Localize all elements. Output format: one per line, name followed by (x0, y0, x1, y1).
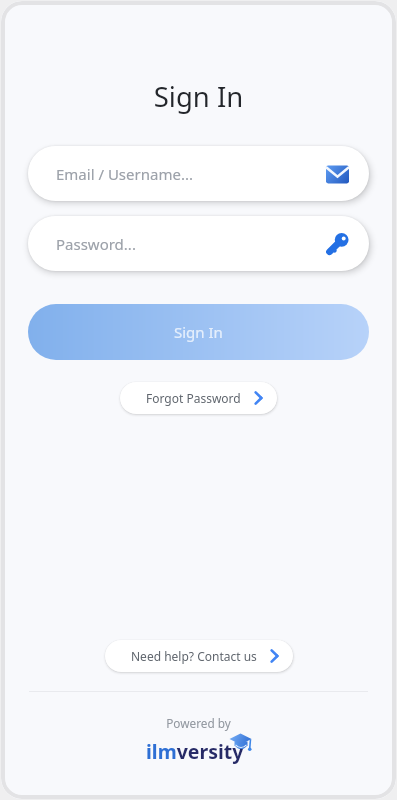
staticText: Need help? Contact us (131, 648, 257, 664)
staticText: Powered by (1, 715, 396, 731)
button[interactable]: Need help? Contact us (105, 640, 293, 672)
staticText: ilmversity (146, 738, 244, 765)
staticText: Forgot Password (146, 390, 241, 406)
staticText: Sign In (1, 78, 396, 115)
other: Need help? Contact us (270, 649, 279, 663)
staticText: Email / Username... (56, 164, 193, 184)
staticText: Sign In (174, 322, 223, 342)
button[interactable]: Forgot Password (120, 382, 277, 414)
staticText: Password... (56, 234, 136, 254)
button[interactable]: Sign In (28, 304, 369, 360)
other: Forgot Password (254, 391, 263, 405)
button[interactable]: Password... (28, 216, 369, 271)
other: Email (326, 162, 349, 185)
button[interactable]: Email / Username... (28, 146, 369, 201)
other: Password (326, 232, 349, 255)
